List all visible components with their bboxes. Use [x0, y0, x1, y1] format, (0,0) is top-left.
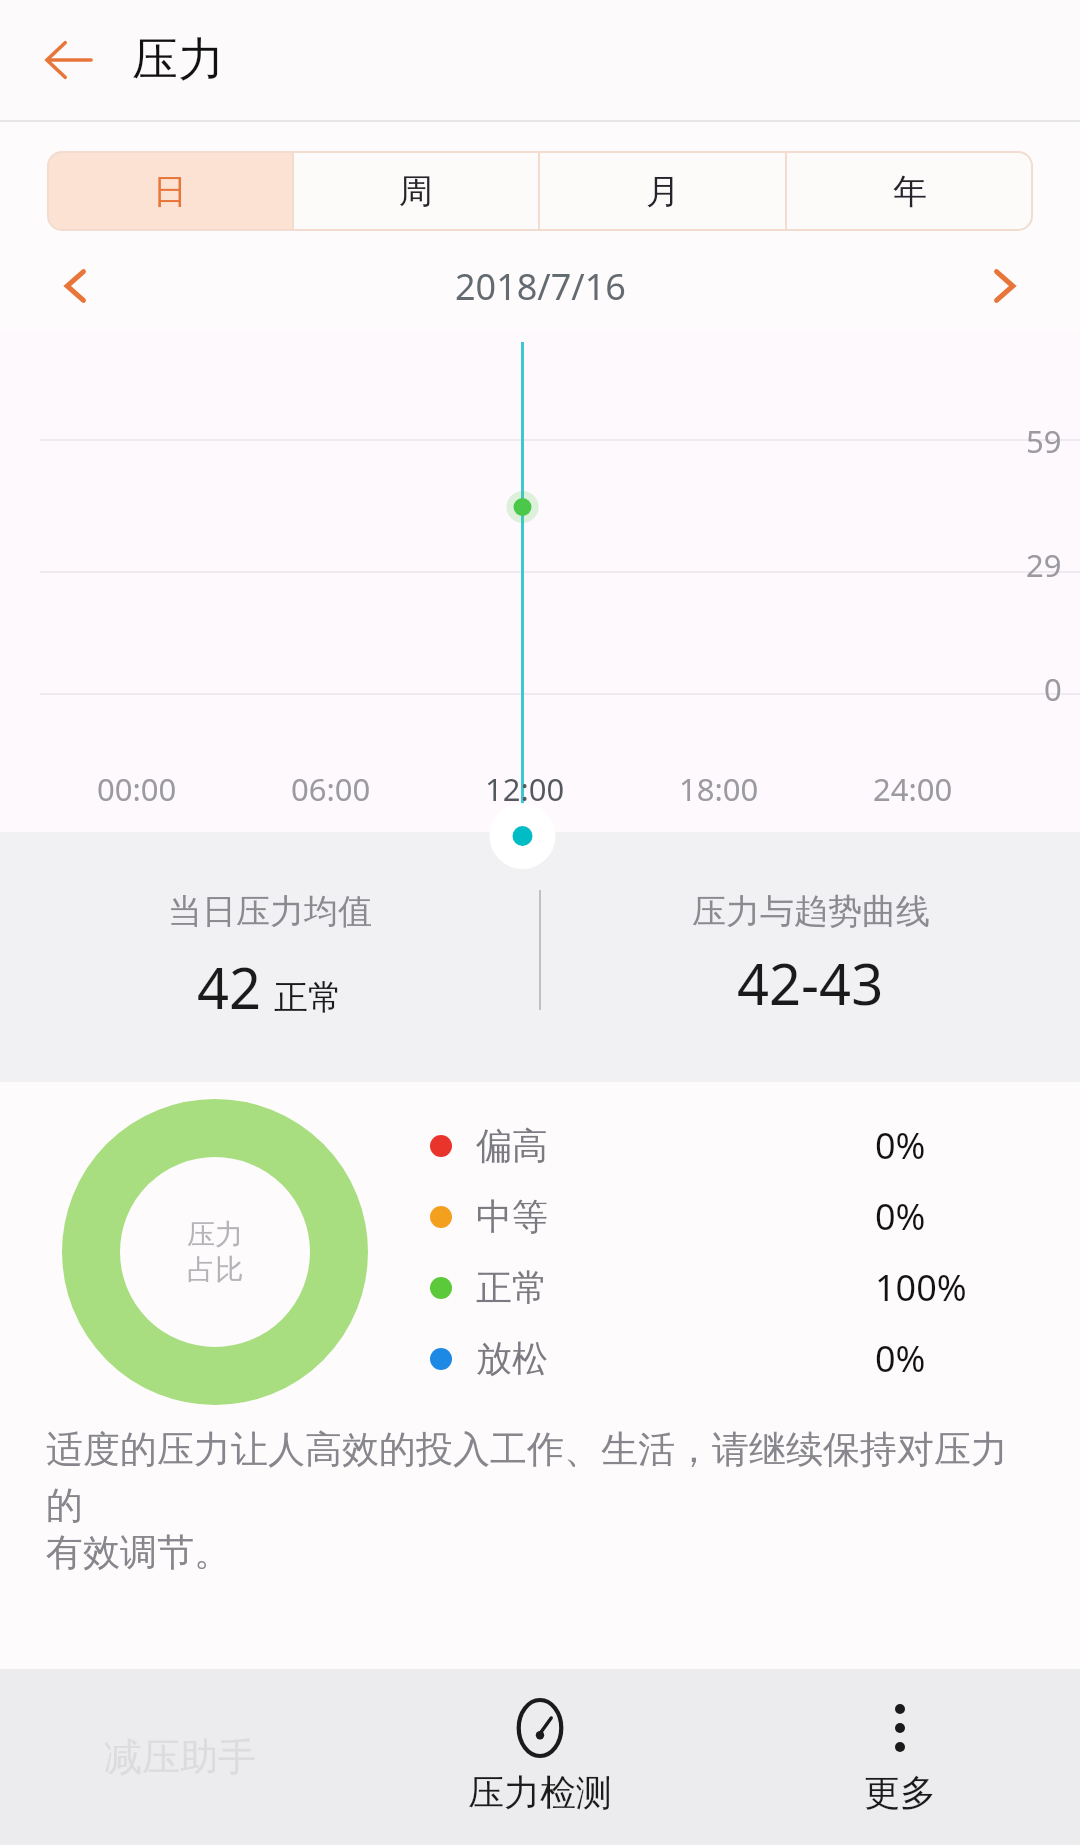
staticText: 压力与趋势曲线	[692, 890, 930, 933]
staticText: 适度的压力让人高效的投入工作、生活，请继续保持对压力的	[46, 1426, 1034, 1529]
button[interactable]: 放松	[430, 1334, 1040, 1383]
staticText: 06:00	[291, 768, 371, 810]
staticText: 中等	[476, 1194, 548, 1239]
staticText: 29	[1026, 544, 1062, 586]
button[interactable]: 年	[787, 152, 1032, 230]
staticText: 59	[1026, 420, 1062, 462]
button[interactable]: 返回	[30, 21, 108, 99]
staticText: 更多	[864, 1770, 936, 1815]
button[interactable]: 后一天	[972, 254, 1036, 318]
staticText: 0	[1044, 668, 1062, 710]
button[interactable]: 更多	[720, 1669, 1080, 1845]
staticText: 12:00	[485, 768, 565, 810]
staticText: 周	[399, 170, 433, 213]
staticText: 压力	[132, 31, 224, 89]
staticText: 0%	[875, 1334, 926, 1383]
staticText: 减压助手	[104, 1733, 256, 1781]
staticText: 年	[893, 170, 927, 213]
button[interactable]: 日	[48, 152, 292, 230]
staticText: 偏高	[476, 1123, 548, 1168]
staticText: 0%	[875, 1192, 926, 1241]
staticText: 有效调节。	[46, 1529, 231, 1576]
staticText: 压力	[187, 1217, 243, 1252]
staticText: 00:00	[97, 768, 177, 810]
button[interactable]: 周	[294, 152, 538, 230]
staticText: 2018/7/16	[455, 262, 626, 311]
staticText: 100%	[875, 1263, 967, 1312]
staticText: 日	[153, 170, 187, 213]
button[interactable]: 压力检测	[360, 1669, 720, 1845]
button[interactable]: 月	[540, 152, 785, 230]
staticText: 当日压力均值	[168, 890, 372, 933]
staticText: 正常	[476, 1265, 548, 1310]
button[interactable]: 中等	[430, 1192, 1040, 1241]
staticText: 24:00	[873, 768, 953, 810]
staticText: 42-43	[737, 945, 884, 1021]
button[interactable]: 前一天	[44, 254, 108, 318]
staticText: 42	[197, 949, 262, 1025]
staticText: 18:00	[679, 768, 759, 810]
staticText: 压力检测	[468, 1770, 612, 1815]
staticText: 正常	[274, 976, 342, 1019]
staticText: 0%	[875, 1121, 926, 1170]
button[interactable]: 偏高	[430, 1121, 1040, 1170]
button[interactable]: 正常	[430, 1263, 1040, 1312]
staticText: 月	[646, 170, 680, 213]
staticText: 放松	[476, 1336, 548, 1381]
staticText: 占比	[187, 1252, 243, 1287]
